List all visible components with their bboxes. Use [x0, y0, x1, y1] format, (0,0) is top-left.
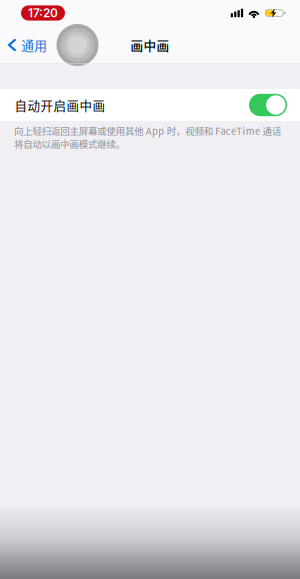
staticText: 17:20 [28, 6, 58, 20]
staticText: 通用 [21, 36, 47, 54]
staticText: 向上轻扫返回主屏幕或使用其他 App 时，视频和 FaceTime 通话将自动以… [14, 124, 281, 150]
button[interactable]: 自动开启画中画 [0, 89, 300, 121]
staticText: 自动开启画中画 [14, 96, 105, 114]
staticText: 画中画 [130, 36, 169, 54]
button[interactable]: 返回通用 [0, 26, 55, 64]
